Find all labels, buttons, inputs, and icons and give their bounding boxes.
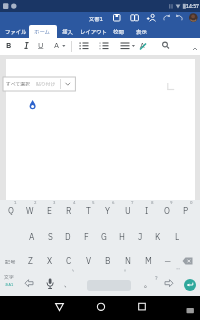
- button[interactable]: R: [59, 204, 78, 219]
- staticText: 9: [170, 200, 173, 206]
- staticText: M: [145, 256, 152, 268]
- staticText: 14:57: [186, 3, 199, 10]
- button[interactable]: 文字: [1, 273, 17, 282]
- button[interactable]: [21, 275, 37, 291]
- staticText: すべて選択: [6, 81, 30, 88]
- staticText: K: [155, 232, 161, 244]
- staticText: 5: [92, 200, 95, 206]
- staticText: 表示: [136, 28, 147, 36]
- staticText: 2: [34, 200, 37, 206]
- button[interactable]: すべて選択: [5, 78, 31, 90]
- button[interactable]: S: [41, 230, 59, 245]
- button[interactable]: [178, 254, 196, 268]
- staticText: 、: [64, 280, 71, 290]
- staticText: S: [48, 232, 53, 244]
- button[interactable]: [42, 276, 58, 292]
- staticText: 8: [151, 200, 154, 206]
- button[interactable]: L: [168, 230, 186, 245]
- staticText: レイアウト: [80, 28, 107, 36]
- staticText: 7: [131, 200, 134, 206]
- staticText: Y: [105, 206, 110, 218]
- button[interactable]: J: [131, 230, 149, 245]
- button[interactable]: Z: [21, 254, 39, 269]
- button[interactable]: A: [23, 230, 41, 245]
- staticText: 挿入: [62, 28, 73, 36]
- button[interactable]: U: [35, 40, 46, 51]
- button[interactable]: M: [139, 254, 157, 269]
- staticText: G: [101, 232, 107, 244]
- button[interactable]: [160, 275, 177, 291]
- staticText: 文書1: [89, 15, 103, 23]
- button[interactable]: G: [95, 230, 113, 245]
- button[interactable]: ー: [158, 254, 176, 269]
- button[interactable]: Y: [98, 204, 117, 219]
- staticText: A: [29, 232, 35, 244]
- button[interactable]: F: [77, 230, 95, 245]
- button[interactable]: 記号: [1, 255, 19, 268]
- staticText: 文字: [4, 274, 15, 281]
- staticText: Z: [28, 256, 33, 268]
- staticText: D: [65, 232, 71, 244]
- staticText: U: [38, 40, 44, 51]
- button[interactable]: Q: [1, 204, 20, 219]
- button[interactable]: 貼り付け: [35, 78, 56, 90]
- button[interactable]: [183, 304, 197, 316]
- staticText: X: [47, 256, 53, 268]
- button[interactable]: [29, 25, 57, 38]
- button[interactable]: I: [137, 204, 156, 219]
- staticText: I: [145, 206, 149, 218]
- button[interactable]: V: [80, 254, 98, 269]
- staticText: H: [119, 232, 125, 244]
- button[interactable]: D: [59, 230, 77, 245]
- button[interactable]: レイアウト: [78, 26, 108, 37]
- button[interactable]: T: [79, 204, 98, 219]
- button[interactable]: 、: [60, 278, 74, 291]
- button[interactable]: [48, 298, 70, 316]
- button[interactable]: W: [20, 204, 39, 219]
- staticText: B: [105, 256, 111, 268]
- button[interactable]: 校閲: [110, 26, 126, 37]
- button[interactable]: A: [138, 40, 147, 51]
- staticText: J: [138, 232, 143, 244]
- staticText: 0: [190, 200, 193, 206]
- button[interactable]: H: [113, 230, 131, 245]
- button[interactable]: [184, 279, 196, 291]
- staticText: N: [125, 256, 131, 268]
- button[interactable]: B: [3, 40, 14, 51]
- button[interactable]: N: [119, 254, 137, 269]
- button[interactable]: 挿入: [57, 26, 77, 37]
- button[interactable]: K: [149, 230, 167, 245]
- staticText: 記号: [5, 258, 16, 266]
- button[interactable]: 表示: [133, 26, 149, 37]
- button[interactable]: ファイル: [3, 26, 28, 37]
- staticText: ー: [164, 257, 171, 267]
- button[interactable]: P: [176, 204, 195, 219]
- staticText: F: [84, 232, 89, 244]
- staticText: O: [164, 206, 170, 218]
- staticText: W: [26, 206, 34, 218]
- staticText: 。: [144, 280, 151, 290]
- staticText: R: [66, 206, 72, 218]
- staticText: 6: [112, 200, 115, 206]
- staticText: A: [140, 41, 145, 51]
- staticText: Q: [8, 206, 14, 218]
- button[interactable]: 。: [140, 278, 154, 291]
- staticText: 貼り付け: [36, 81, 56, 88]
- button[interactable]: X: [41, 254, 59, 269]
- staticText: P: [183, 206, 189, 218]
- staticText: ?: [155, 275, 158, 282]
- button[interactable]: O: [157, 204, 176, 219]
- button[interactable]: B: [99, 254, 117, 269]
- staticText: T: [86, 206, 91, 218]
- staticText: C: [66, 256, 72, 268]
- staticText: A: [54, 40, 60, 51]
- staticText: 4: [73, 200, 76, 206]
- button[interactable]: [21, 40, 32, 51]
- button[interactable]: C: [60, 254, 78, 269]
- button[interactable]: A: [51, 40, 62, 51]
- button[interactable]: E: [40, 204, 59, 219]
- button[interactable]: [131, 298, 153, 316]
- button[interactable]: [90, 298, 112, 316]
- button[interactable]: U: [118, 204, 137, 219]
